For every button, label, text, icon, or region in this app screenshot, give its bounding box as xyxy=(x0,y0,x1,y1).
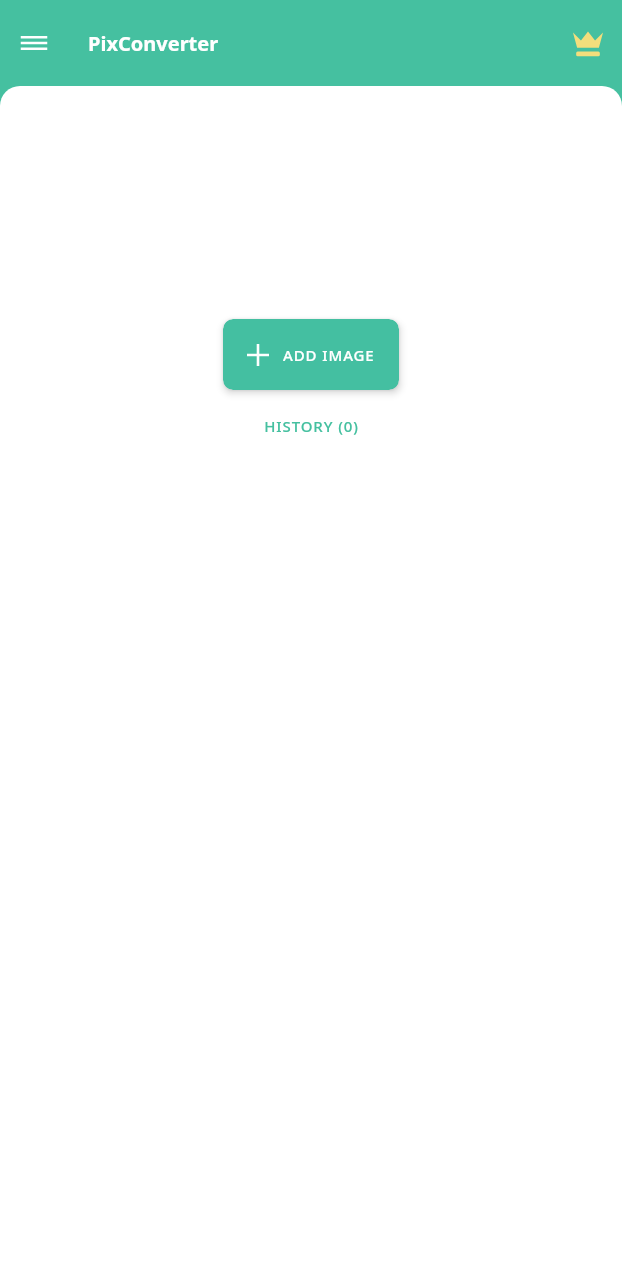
staticText: HISTORY (0) xyxy=(264,416,359,436)
button[interactable]: Go premium xyxy=(562,17,614,69)
button[interactable]: ADD IMAGE xyxy=(223,319,399,390)
staticText: PixConverter xyxy=(88,30,219,57)
button[interactable]: HISTORY (0) xyxy=(250,410,373,442)
button[interactable]: Open navigation menu xyxy=(10,19,58,67)
staticText: ADD IMAGE xyxy=(283,345,375,365)
